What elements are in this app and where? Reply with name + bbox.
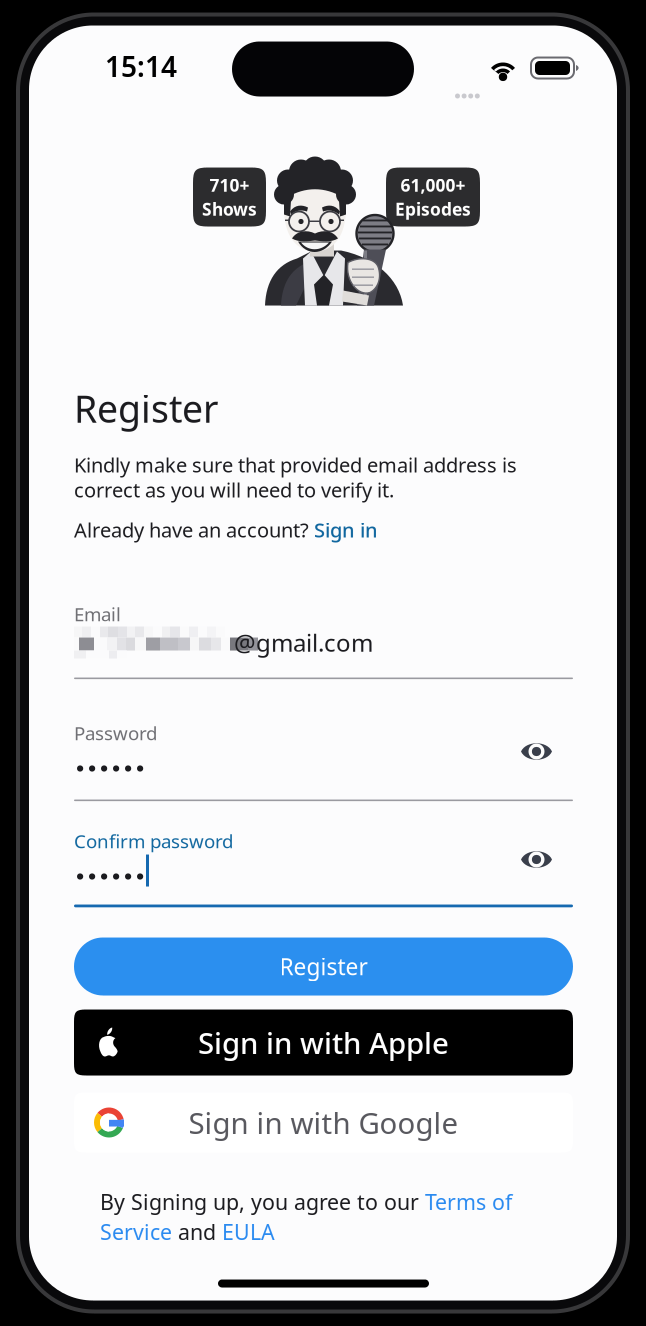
staticText: Register <box>279 951 367 981</box>
staticText: Sign in <box>314 516 378 543</box>
staticText: Service <box>100 1217 172 1246</box>
button[interactable]: Register <box>74 937 573 995</box>
staticText: Sign in with Google <box>188 1103 458 1142</box>
staticText: Shows <box>202 197 257 220</box>
staticText: Confirm password <box>74 828 233 853</box>
staticText: EULA <box>222 1217 275 1246</box>
button[interactable]: Show password <box>520 740 553 762</box>
staticText: Episodes <box>395 197 471 220</box>
button[interactable]: Show confirm password <box>520 848 553 870</box>
staticText: 710+ <box>209 173 249 196</box>
staticText: Sign in with Apple <box>198 1023 449 1062</box>
button[interactable]: Sign in <box>314 516 378 543</box>
staticText: and <box>172 1217 222 1246</box>
button[interactable]: Sign in with Google <box>74 1092 573 1152</box>
staticText: Email <box>74 601 121 626</box>
staticText: Already have an account? <box>74 516 309 543</box>
staticText: 15:14 <box>105 47 177 85</box>
staticText: Register <box>74 383 218 433</box>
staticText: correct as you will need to verify it. <box>74 476 394 503</box>
button[interactable]: Service <box>100 1217 172 1246</box>
staticText: 61,000+ <box>400 173 465 196</box>
button[interactable]: Terms of <box>425 1187 512 1216</box>
staticText: Kindly make sure that provided email add… <box>74 451 517 478</box>
button[interactable]: Sign in with Apple <box>74 1009 573 1075</box>
staticText: Terms of <box>425 1187 512 1216</box>
button[interactable]: EULA <box>222 1217 275 1246</box>
staticText: @gmail.com <box>234 627 373 658</box>
staticText: Password <box>74 720 157 745</box>
staticText: By Signing up, you agree to our <box>100 1187 425 1216</box>
